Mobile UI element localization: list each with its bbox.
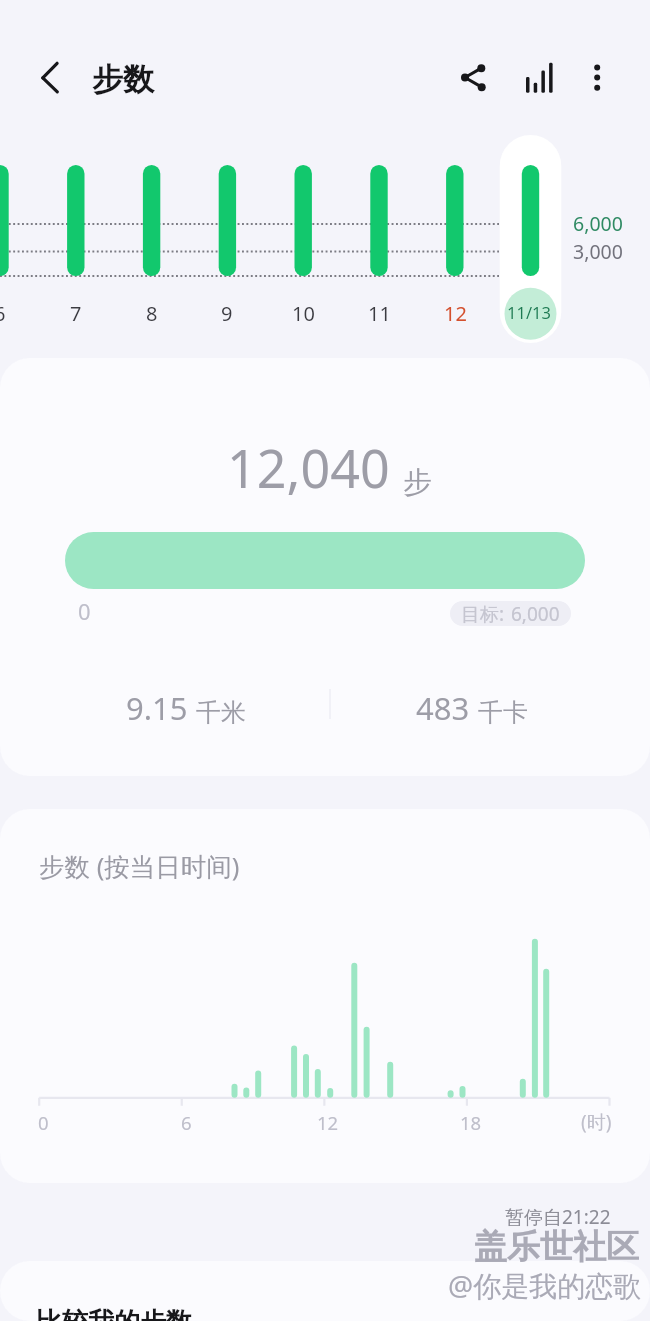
button[interactable]: 11/13 <box>501 135 561 343</box>
button[interactable]: 12 <box>425 135 485 343</box>
staticText: 目标: <box>461 601 505 626</box>
staticText: 9.15 <box>126 687 188 729</box>
staticText: 步数 <box>92 60 154 99</box>
staticText: (时) <box>581 1109 612 1135</box>
button[interactable]: 6 <box>0 135 30 343</box>
staticText: 11 <box>368 300 391 327</box>
staticText: 7 <box>70 300 82 327</box>
button[interactable]: Share <box>447 50 503 106</box>
staticText: 10 <box>292 300 315 327</box>
staticText: 暂停自21:22 <box>505 1204 611 1230</box>
staticText: 步数 (按当日时间) <box>39 849 240 884</box>
button[interactable]: 10 <box>273 135 333 343</box>
staticText: 483 <box>416 687 470 729</box>
button[interactable]: More options <box>569 50 625 106</box>
staticText: 9 <box>221 300 233 327</box>
staticText: 12 <box>317 1110 339 1135</box>
staticText: 步 <box>403 464 432 501</box>
button[interactable]: Chart <box>506 50 562 106</box>
staticText: 8 <box>146 300 158 327</box>
staticText: 18 <box>460 1110 482 1135</box>
staticText: 比较我的步数 <box>36 1306 192 1321</box>
staticText: 3,000 <box>573 238 623 265</box>
staticText: 6,000 <box>573 210 623 237</box>
staticText: 千卡 <box>478 697 528 728</box>
button[interactable]: 11 <box>349 135 409 343</box>
staticText: 0 <box>38 1110 49 1135</box>
staticText: 6 <box>181 1110 192 1135</box>
staticText: 千米 <box>196 697 246 728</box>
button[interactable]: 12,040 <box>0 358 650 776</box>
staticText: 0 <box>78 596 91 626</box>
staticText: 11/13 <box>507 301 551 323</box>
staticText: 12,040 <box>227 432 390 503</box>
button[interactable]: 步数 (按当日时间) <box>0 809 650 1183</box>
staticText: 盖乐世社区 <box>474 1226 639 1268</box>
button[interactable]: 8 <box>122 135 182 343</box>
button[interactable]: 9 <box>197 135 257 343</box>
button[interactable]: 比较我的步数 <box>0 1261 650 1321</box>
staticText: 6 <box>0 300 6 327</box>
button[interactable]: Back <box>24 48 80 104</box>
staticText: @你是我的恋歌 <box>448 1266 642 1304</box>
button[interactable]: 7 <box>46 135 106 343</box>
staticText: 12 <box>444 300 467 327</box>
staticText: 6,000 <box>511 601 560 626</box>
